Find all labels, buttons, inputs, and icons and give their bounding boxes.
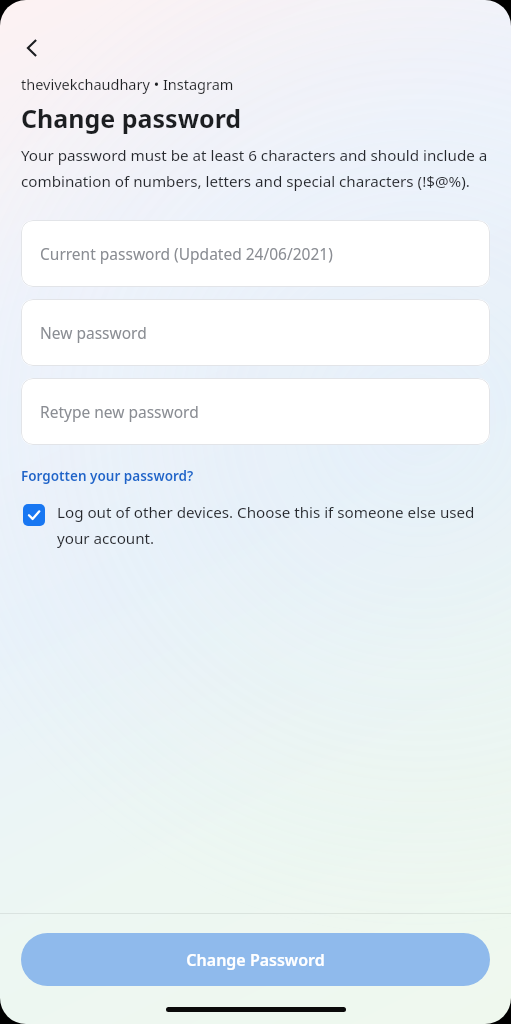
button[interactable]: Current password (Updated 24/06/2021) [21,220,490,287]
staticText: Change Password [186,949,325,971]
staticText: Change password [21,101,242,135]
button[interactable]: Retype new password [21,378,490,445]
button[interactable]: New password [21,299,490,366]
staticText: Log out of other devices. Choose this if… [57,502,489,548]
staticText: New password [40,322,147,343]
button[interactable]: Back [8,24,56,72]
staticText: Retype new password [40,401,199,422]
button[interactable]: Forgotten your password? [21,467,194,485]
staticText: Forgotten your password? [21,467,194,485]
staticText: Your password must be at least 6 charact… [21,145,490,191]
staticText: thevivekchaudhary • Instagram [21,74,234,94]
button[interactable]: Change Password [21,933,490,986]
staticText: Current password (Updated 24/06/2021) [40,243,333,264]
button[interactable]: Log out of other devices. Choose this if… [0,502,511,548]
